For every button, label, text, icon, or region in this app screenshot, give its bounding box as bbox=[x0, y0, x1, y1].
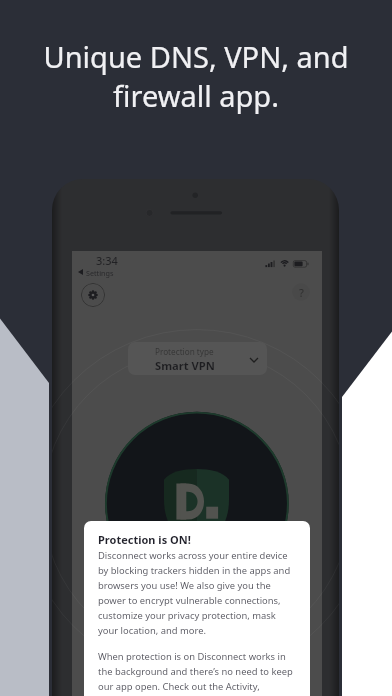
staticText: Disconnect works across your entire devi… bbox=[98, 549, 298, 637]
staticText: Smart VPN bbox=[155, 358, 215, 373]
staticText: Settings bbox=[86, 268, 114, 278]
staticText: Protection type bbox=[155, 346, 214, 357]
staticText: Protection is ON! bbox=[98, 532, 191, 547]
staticText: ? bbox=[299, 285, 304, 300]
button[interactable]: Protection type bbox=[128, 342, 267, 375]
staticText: Unique DNS, VPN, and firewall app. bbox=[0, 37, 392, 115]
staticText: 3:34 bbox=[96, 253, 118, 268]
button[interactable]: Help bbox=[292, 283, 310, 301]
button[interactable]: Settings bbox=[81, 283, 105, 307]
staticText: When protection is on Disconnect works i… bbox=[98, 650, 298, 696]
